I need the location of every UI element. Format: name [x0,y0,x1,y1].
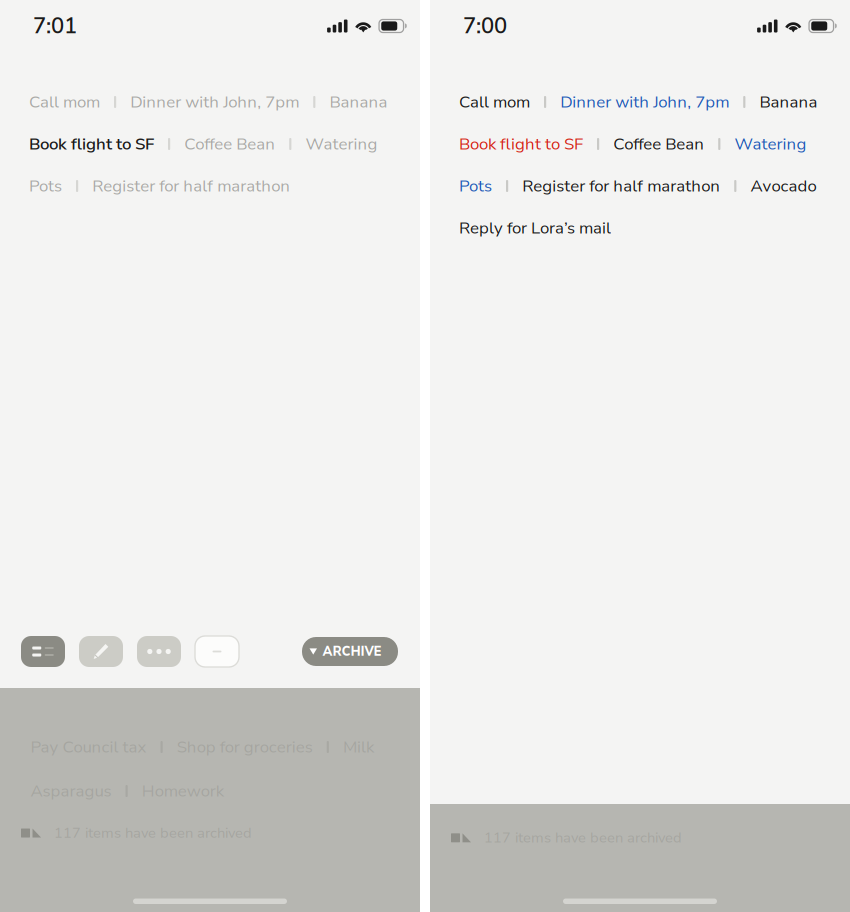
staticText: Banana [329,90,387,113]
button[interactable]: Coffee Bean [184,132,275,155]
staticText: Dinner with John, 7pm [130,90,299,113]
staticText: Reply for Lora’s mail [459,216,611,239]
button[interactable]: Register for half marathon [522,174,720,197]
staticText: Watering [305,132,377,155]
staticText: Book flight to SF [29,132,154,155]
button[interactable]: Call mom [29,90,100,113]
button[interactable]: Register for half marathon [92,174,290,197]
staticText: Pots [459,174,492,197]
button[interactable]: Pots [459,174,492,197]
button[interactable]: Homework [142,779,224,802]
button[interactable]: ARCHIVE [302,637,398,666]
staticText: Shop for groceries [177,735,313,758]
button[interactable]: Reply for Lora’s mail [459,216,611,239]
staticText: Watering [734,132,806,155]
staticText: 117 items have been archived [484,828,682,848]
staticText: Pay Council tax [30,735,146,758]
staticText: Register for half marathon [92,174,290,197]
button[interactable]: Watering [734,132,806,155]
staticText: Book flight to SF [459,132,583,155]
button[interactable]: Banana [329,90,387,113]
staticText: 7:01 [33,11,77,41]
staticText: Coffee Bean [184,132,275,155]
button[interactable]: Pay Council tax [30,735,146,758]
staticText: Milk [343,735,374,758]
staticText: Asparagus [30,779,111,802]
staticText: 117 items have been archived [54,823,252,843]
staticText: Pots [29,174,62,197]
staticText: 7:00 [463,11,507,41]
button[interactable]: More options [137,636,181,667]
staticText: Dinner with John, 7pm [560,90,729,113]
button[interactable]: Pots [29,174,62,197]
button[interactable]: Avocado [750,174,816,197]
button[interactable]: Book flight to SF [29,132,154,155]
staticText: ARCHIVE [322,643,381,660]
button[interactable]: Shop for groceries [177,735,313,758]
button[interactable]: Edit [79,636,123,667]
button[interactable]: Call mom [459,90,530,113]
button[interactable]: Dinner with John, 7pm [560,90,729,113]
button[interactable]: Watering [305,132,377,155]
staticText: Register for half marathon [522,174,720,197]
button[interactable]: Book flight to SF [459,132,583,155]
button[interactable]: Coffee Bean [613,132,704,155]
staticText: Homework [142,779,224,802]
button[interactable]: Asparagus [30,779,111,802]
staticText: Coffee Bean [613,132,704,155]
button[interactable]: Banana [759,90,817,113]
button[interactable]: Milk [343,735,374,758]
staticText: Call mom [459,90,530,113]
button[interactable]: List view [21,636,65,667]
staticText: Banana [759,90,817,113]
staticText: Avocado [750,174,816,197]
button[interactable]: Dinner with John, 7pm [130,90,299,113]
staticText: Call mom [29,90,100,113]
button[interactable]: Collapse [195,636,239,667]
